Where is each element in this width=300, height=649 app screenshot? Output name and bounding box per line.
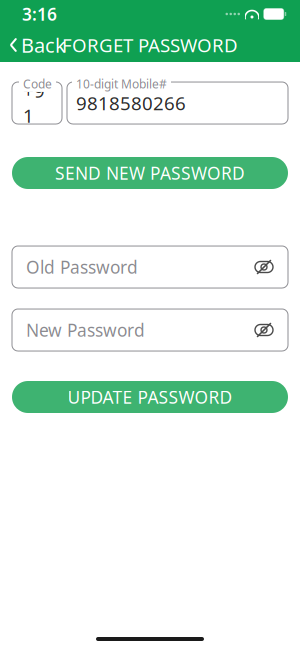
button[interactable]: Show Old Password — [248, 251, 280, 283]
staticText: SEND NEW PASSWORD — [55, 161, 245, 184]
staticText: New Password — [26, 318, 145, 341]
staticText: Back — [21, 32, 66, 58]
button[interactable]: Back — [0, 28, 74, 62]
staticText: 9818580266 — [76, 91, 186, 115]
staticText: Code — [23, 76, 52, 92]
staticText: Old Password — [26, 255, 138, 278]
button[interactable]: Show New Password — [248, 314, 280, 346]
staticText: +91 — [23, 78, 45, 128]
staticText: FORGET PASSWORD — [62, 33, 238, 57]
staticText: 10-digit Mobile# — [76, 76, 167, 92]
staticText: UPDATE PASSWORD — [67, 385, 232, 408]
staticText: 3:16 — [22, 2, 57, 25]
button[interactable]: SEND NEW PASSWORD — [12, 157, 288, 189]
button[interactable]: UPDATE PASSWORD — [12, 381, 288, 413]
